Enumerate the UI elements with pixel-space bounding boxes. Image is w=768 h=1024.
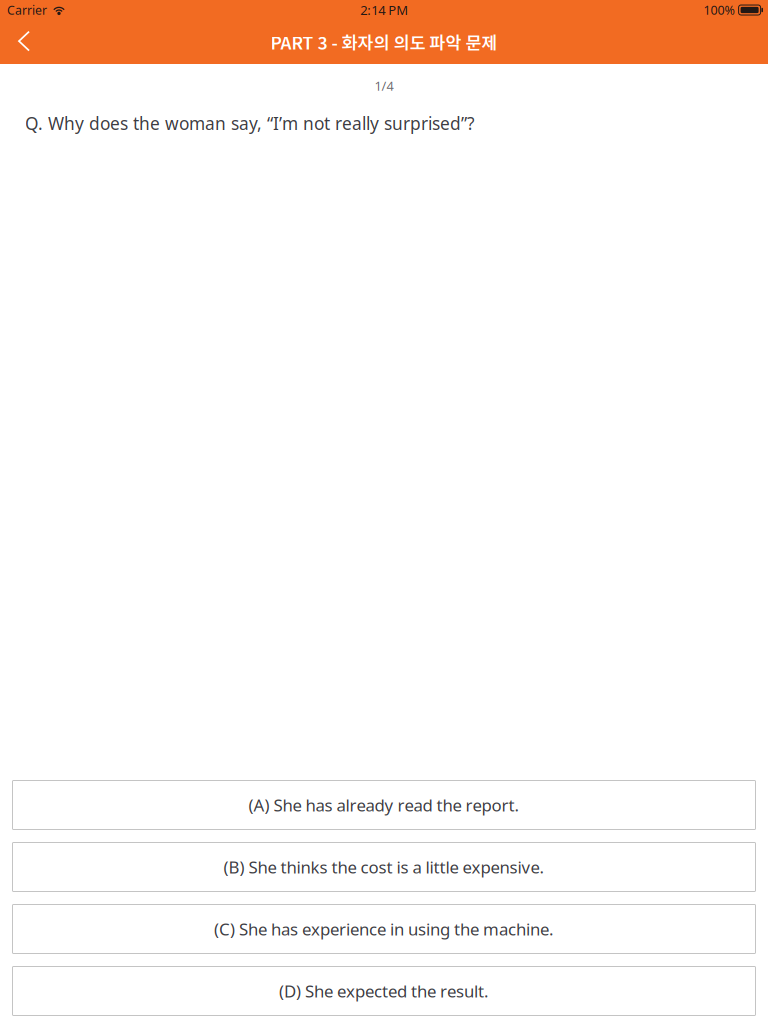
button[interactable]: Back: [0, 20, 48, 64]
staticText: 100%: [704, 1, 735, 19]
staticText: (A) She has already read the report.: [248, 794, 519, 816]
button[interactable]: (C) She has experience in using the mach…: [12, 904, 756, 954]
staticText: (B) She thinks the cost is a little expe…: [223, 856, 544, 878]
staticText: (C) She has experience in using the mach…: [214, 918, 554, 940]
button[interactable]: (A) She has already read the report.: [12, 780, 756, 830]
button[interactable]: (B) She thinks the cost is a little expe…: [12, 842, 756, 892]
button[interactable]: (D) She expected the result.: [12, 966, 756, 1016]
staticText: Carrier: [7, 2, 47, 18]
staticText: PART 3 - 화자의 의도 파악 문제: [270, 29, 497, 55]
staticText: 2:14 PM: [360, 1, 408, 19]
staticText: (D) She expected the result.: [279, 980, 489, 1002]
staticText: 1/4: [374, 77, 393, 94]
staticText: Q. Why does the woman say, “I’m not real…: [25, 111, 475, 135]
